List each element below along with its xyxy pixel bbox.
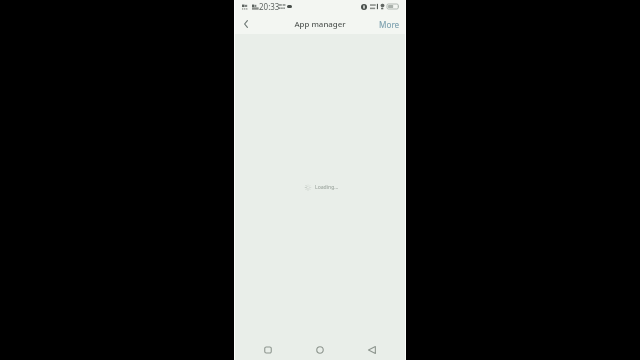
button[interactable]: More [379,19,400,30]
staticText: App manager [294,19,346,30]
button[interactable]: Back [236,14,256,34]
button[interactable]: Back [359,337,385,360]
button[interactable]: Recents [255,337,281,360]
staticText: Loading... [315,184,339,191]
staticText: More [379,19,400,30]
staticText: 20:33 [259,1,280,12]
button[interactable]: Home [307,337,333,360]
